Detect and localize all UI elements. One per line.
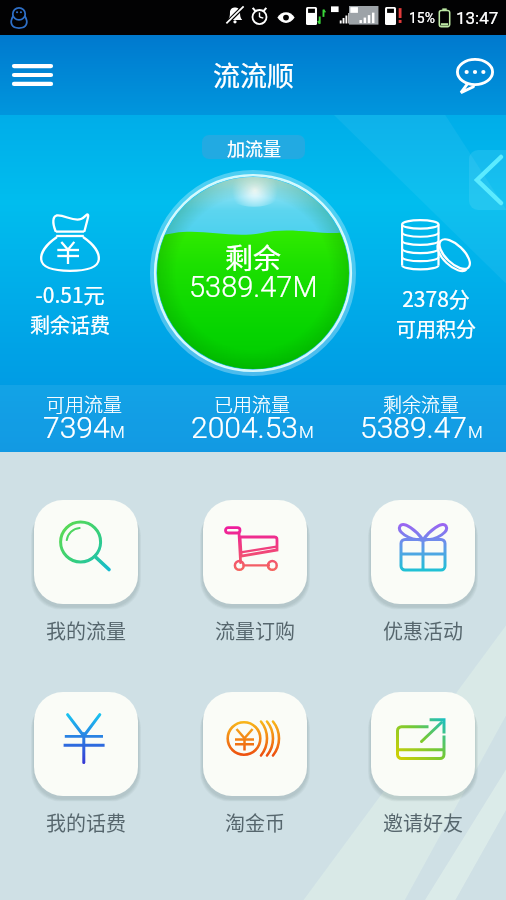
button[interactable]: 优惠活动 bbox=[363, 500, 483, 645]
button[interactable]: 邀请好友 bbox=[363, 692, 483, 837]
button[interactable]: 已用流量 bbox=[168, 385, 337, 452]
staticText: M bbox=[468, 422, 483, 442]
staticText: 我的流量 bbox=[46, 616, 126, 645]
button[interactable]: 我的话费 bbox=[26, 692, 146, 837]
button[interactable]: Menu bbox=[2, 45, 62, 105]
button[interactable]: 流量订购 bbox=[195, 500, 315, 645]
staticText: 2378分 bbox=[402, 283, 470, 313]
staticText: 流量订购 bbox=[215, 616, 295, 645]
staticText: 优惠活动 bbox=[383, 616, 463, 645]
staticText: 剩余流量 bbox=[383, 390, 460, 418]
staticText: 我的话费 bbox=[46, 808, 126, 837]
staticText: 5389.47M bbox=[189, 270, 318, 304]
button[interactable]: Messages bbox=[446, 46, 504, 104]
button[interactable]: 淘金币 bbox=[195, 692, 315, 837]
staticText: 7394 bbox=[43, 410, 110, 445]
staticText: 已用流量 bbox=[214, 390, 291, 418]
button[interactable]: Remaining data bbox=[152, 172, 354, 374]
staticText: 邀请好友 bbox=[383, 808, 463, 837]
button[interactable]: 我的流量 bbox=[26, 500, 146, 645]
staticText: -0.51元 bbox=[35, 279, 105, 309]
staticText: 剩余话费 bbox=[30, 310, 110, 339]
staticText: 剩余 bbox=[225, 237, 282, 278]
button[interactable]: Expand panel bbox=[469, 150, 506, 210]
staticText: 2004.53 bbox=[191, 410, 299, 445]
staticText: 15% bbox=[409, 10, 435, 26]
button[interactable]: 加流量 bbox=[202, 135, 305, 159]
staticText: 流流顺 bbox=[213, 55, 294, 94]
staticText: 13:47 bbox=[456, 8, 499, 28]
staticText: M bbox=[299, 422, 314, 442]
staticText: 加流量 bbox=[227, 135, 281, 159]
staticText: M bbox=[110, 422, 125, 442]
staticText: 5389.47 bbox=[360, 410, 468, 445]
staticText: 可用流量 bbox=[46, 390, 123, 418]
button[interactable]: 剩余流量 bbox=[337, 385, 506, 452]
button[interactable]: 可用流量 bbox=[0, 385, 168, 452]
staticText: 可用积分 bbox=[396, 314, 476, 343]
staticText: 淘金币 bbox=[225, 808, 285, 837]
